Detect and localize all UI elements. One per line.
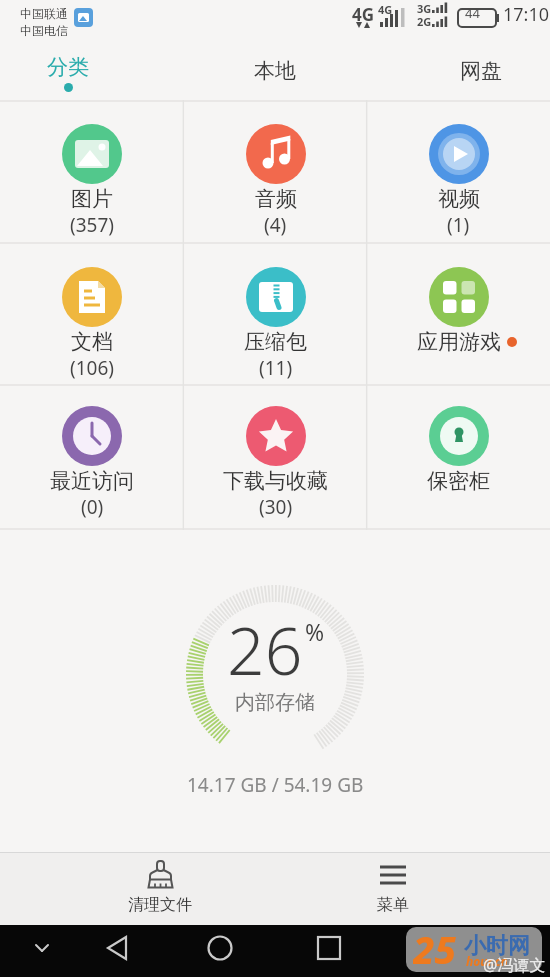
button[interactable]: 保密柜 <box>367 385 550 530</box>
button[interactable]: 视频 <box>367 100 550 243</box>
staticText: @冯谭文 <box>483 954 546 976</box>
staticText: 本地 <box>254 58 296 84</box>
button[interactable]: 应用游戏 <box>367 243 550 385</box>
staticText: (1) <box>447 212 470 238</box>
staticText: 应用游戏 <box>417 329 501 355</box>
staticText: 保密柜 <box>427 468 490 494</box>
staticText: % <box>305 616 325 647</box>
staticText: 25 <box>413 923 456 968</box>
staticText: (30) <box>259 494 293 520</box>
staticText: 下载与收藏 <box>223 468 328 494</box>
staticText: 44 <box>465 4 480 22</box>
staticText: 26 <box>227 604 303 694</box>
staticText: 17:10 <box>503 2 550 27</box>
staticText: 内部存储 <box>235 690 315 715</box>
button[interactable]: 网盘 <box>421 45 541 100</box>
staticText: 网盘 <box>460 58 502 84</box>
staticText: 清理文件 <box>128 895 192 915</box>
button[interactable]: 分类 <box>8 45 128 100</box>
button[interactable]: 文档 <box>0 243 184 385</box>
staticText: 小时网 <box>464 932 530 960</box>
staticText: 14.17 GB / 54.19 GB <box>187 772 364 798</box>
staticText: 菜单 <box>377 895 409 915</box>
button[interactable] <box>303 925 355 977</box>
staticText: hour.cn <box>466 953 508 969</box>
button[interactable]: 图片 <box>0 100 184 243</box>
staticText: 中国联通 <box>20 6 68 21</box>
button[interactable]: 下载与收藏 <box>184 385 367 530</box>
staticText: (357) <box>70 212 115 238</box>
staticText: 压缩包 <box>244 329 307 355</box>
staticText: 最近访问 <box>50 468 134 494</box>
button[interactable] <box>20 929 64 973</box>
button[interactable]: 最近访问 <box>0 385 184 530</box>
staticText: (106) <box>70 355 115 381</box>
button[interactable]: 本地 <box>215 45 335 100</box>
staticText: 4G <box>378 2 393 17</box>
staticText: (11) <box>259 355 293 381</box>
staticText: 文档 <box>71 329 113 355</box>
staticText: 音频 <box>255 186 297 212</box>
staticText: 3G <box>417 1 432 16</box>
staticText: 图片 <box>71 186 113 212</box>
button[interactable]: 菜单 <box>318 858 468 915</box>
staticText: 4G <box>352 3 375 26</box>
button[interactable]: 压缩包 <box>184 243 367 385</box>
button[interactable] <box>96 925 148 977</box>
button[interactable]: 音频 <box>184 100 367 243</box>
staticText: (4) <box>264 212 287 238</box>
staticText: (0) <box>81 494 104 520</box>
button[interactable] <box>194 925 246 977</box>
staticText: 2G <box>417 14 432 29</box>
button[interactable]: 清理文件 <box>85 858 235 915</box>
staticText: 分类 <box>47 54 89 80</box>
staticText: 中国电信 <box>20 23 68 38</box>
staticText: 视频 <box>438 186 480 212</box>
